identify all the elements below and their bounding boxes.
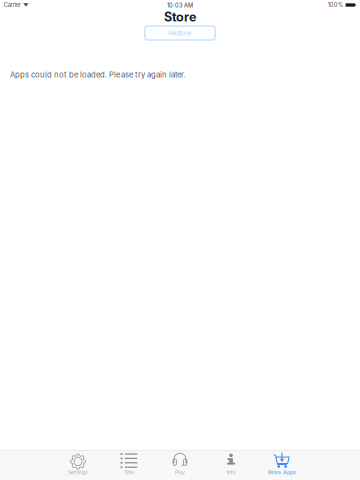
staticText: Settings xyxy=(68,469,88,475)
staticText: Store xyxy=(164,9,196,25)
staticText: Info xyxy=(226,469,235,475)
button[interactable]: Settings xyxy=(52,451,103,480)
button[interactable]: Title xyxy=(103,451,154,480)
staticText: More Apps xyxy=(268,469,296,475)
staticText: Apps could not be loaded. Please try aga… xyxy=(10,70,185,79)
staticText: 10:03 AM xyxy=(167,2,193,9)
button[interactable]: Restore xyxy=(145,26,215,40)
staticText: Title xyxy=(124,469,134,475)
staticText: Restore xyxy=(168,29,191,37)
staticText: Play xyxy=(175,469,185,475)
button[interactable]: Play xyxy=(154,451,205,480)
staticText: 100% xyxy=(328,1,344,8)
staticText: Carrier xyxy=(4,1,21,8)
button[interactable]: Info xyxy=(205,451,256,480)
button[interactable]: More Apps xyxy=(256,451,307,480)
